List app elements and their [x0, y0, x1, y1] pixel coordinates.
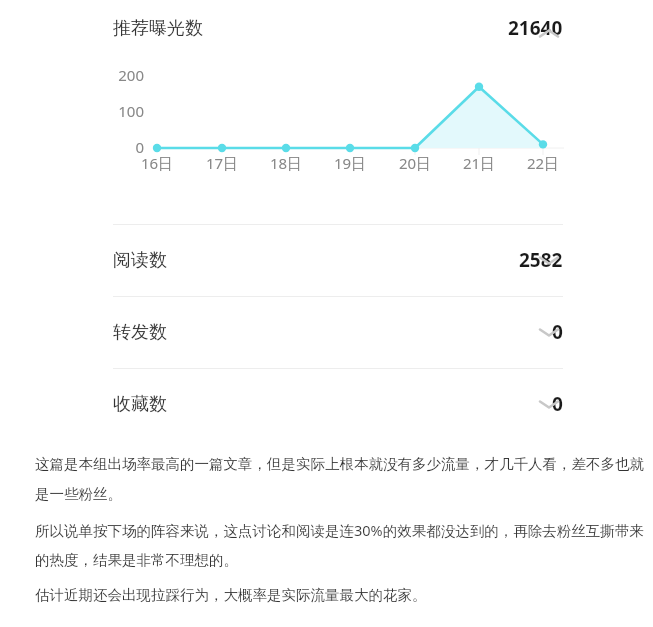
- staticText: 收藏数: [113, 393, 167, 416]
- staticText: 0: [552, 319, 563, 345]
- button[interactable]: 转发数: [113, 296, 563, 368]
- button[interactable]: 阅读数: [113, 224, 563, 296]
- button[interactable]: 收藏数: [113, 368, 563, 440]
- staticText: 阅读数: [113, 249, 167, 272]
- staticText: 0: [100, 137, 144, 157]
- staticText: 22日: [518, 153, 568, 173]
- staticText: 估计近期还会出现拉踩行为，大概率是实际流量最大的花家。: [35, 586, 427, 604]
- staticText: 2582: [519, 247, 563, 273]
- staticText: 19日: [325, 153, 375, 173]
- staticText: 20日: [390, 153, 440, 173]
- staticText: 0: [552, 391, 563, 417]
- button[interactable]: Expand 收藏数: [533, 388, 565, 420]
- staticText: 17日: [197, 153, 247, 173]
- staticText: 这篇是本组出场率最高的一篇文章，但是实际上根本就没有多少流量，才几千人看，差不多…: [35, 455, 645, 504]
- staticText: 转发数: [113, 321, 167, 344]
- button[interactable]: 推荐曝光数: [113, 0, 563, 56]
- staticText: 200: [100, 65, 144, 85]
- staticText: 18日: [261, 153, 311, 173]
- staticText: 推荐曝光数: [113, 17, 203, 40]
- button[interactable]: Collapse 推荐曝光数: [533, 18, 565, 50]
- button[interactable]: Expand 阅读数: [533, 244, 565, 276]
- staticText: 100: [100, 101, 144, 121]
- staticText: 所以说单按下场的阵容来说，这点讨论和阅读是连30%的效果都没达到的，再除去粉丝互…: [35, 520, 645, 570]
- button[interactable]: Expand 转发数: [533, 316, 565, 348]
- staticText: 16日: [132, 153, 182, 173]
- staticText: 21640: [508, 15, 563, 41]
- staticText: 21日: [454, 153, 504, 173]
